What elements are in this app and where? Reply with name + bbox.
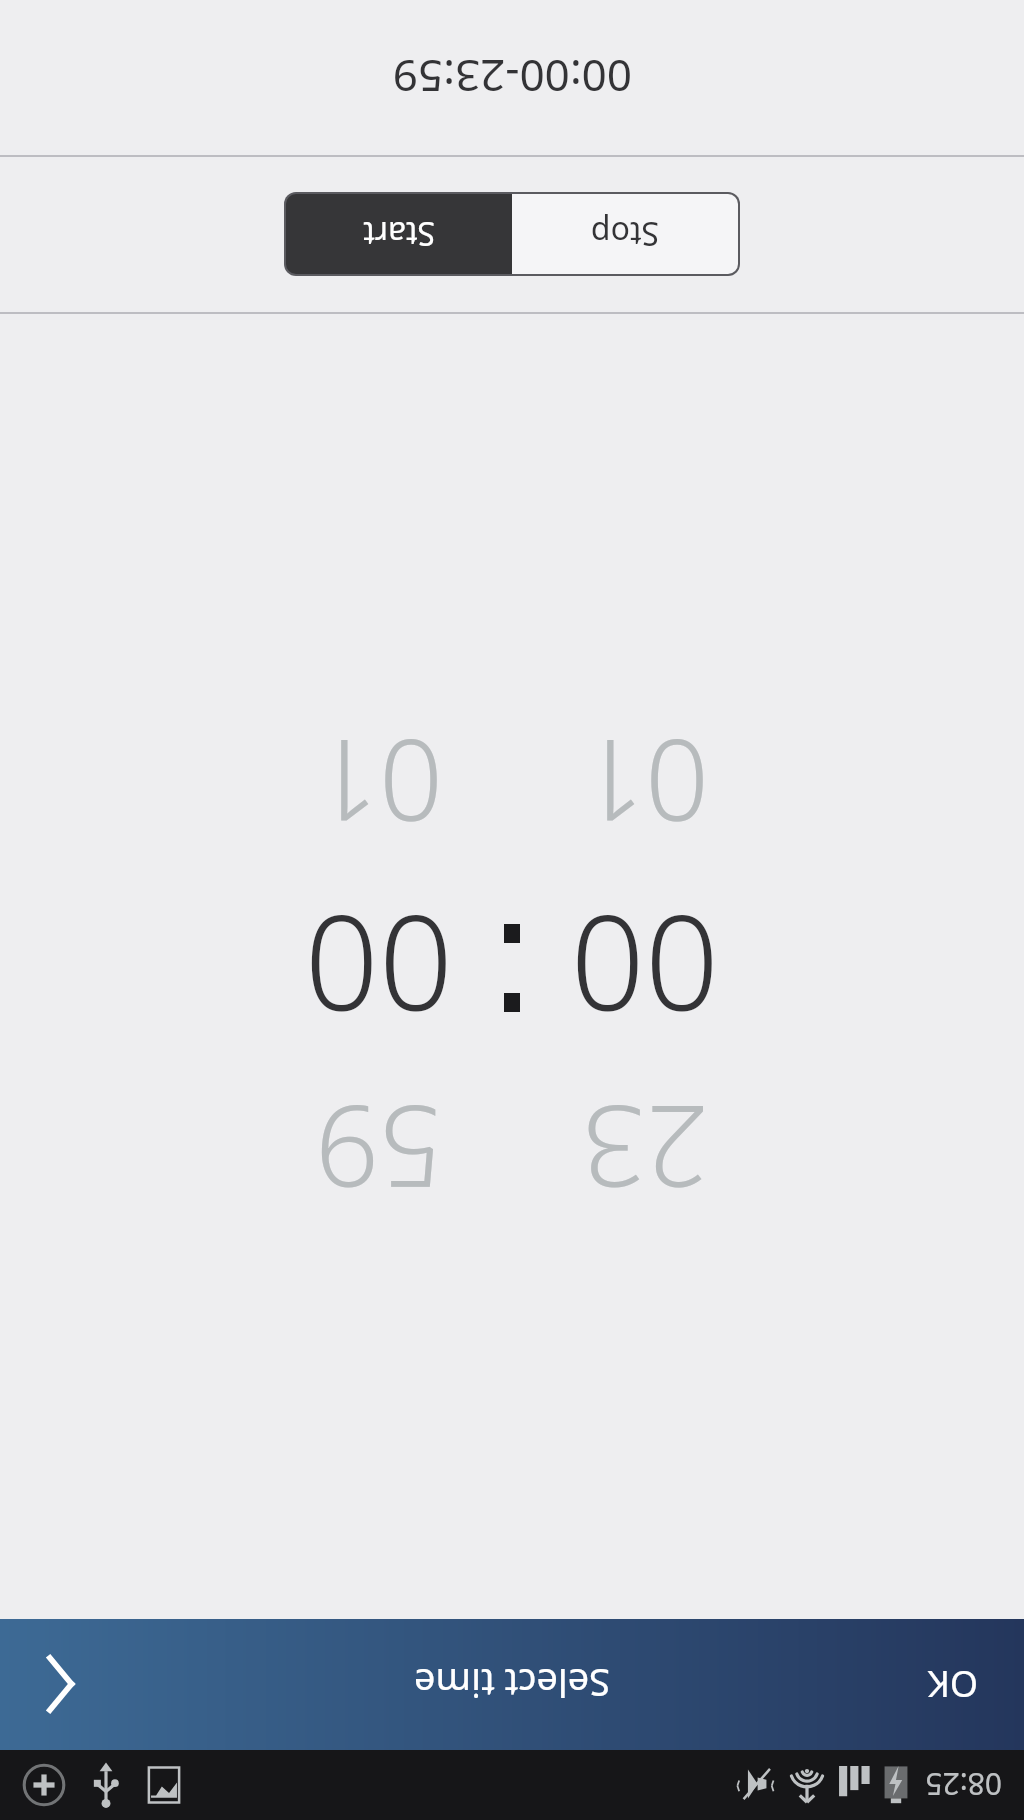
button[interactable]: Start [286, 194, 512, 274]
button[interactable]: 59 [276, 707, 482, 1226]
button[interactable]: Back [0, 1619, 120, 1750]
button[interactable]: Stop [512, 194, 738, 274]
staticText: 00 [304, 878, 453, 1055]
staticText: 01 [315, 707, 443, 860]
button[interactable]: 23 [542, 707, 748, 1226]
staticText: Stop [590, 212, 659, 256]
staticText: 00 [570, 878, 719, 1055]
staticText: 00:00-23:59 [392, 47, 632, 107]
staticText: 08:25 [925, 1764, 1002, 1805]
staticText: 23 [581, 1073, 709, 1226]
button[interactable]: OK [881, 1619, 1024, 1750]
staticText: 01 [581, 707, 709, 860]
staticText: 59 [315, 1073, 443, 1226]
staticText: Select time [414, 1658, 610, 1710]
staticText: OK [927, 1660, 978, 1709]
staticText: Start [363, 212, 435, 256]
